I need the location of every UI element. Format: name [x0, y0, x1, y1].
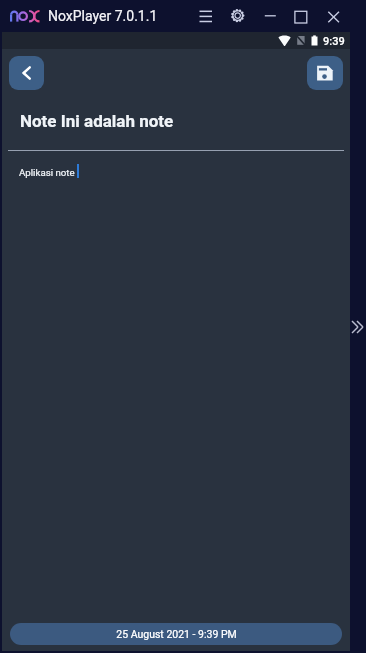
button[interactable]: Expand sidebar	[350, 310, 366, 344]
staticText: NoxPlayer 7.0.1.1	[48, 8, 158, 24]
button[interactable]: Close	[322, 4, 346, 28]
button[interactable]: Menu	[194, 3, 218, 27]
button[interactable]: Save	[307, 56, 343, 90]
staticText: Note Ini adalah note	[20, 111, 174, 131]
staticText: 9:39	[323, 35, 345, 48]
button[interactable]: Settings	[226, 3, 250, 27]
button[interactable]: Back	[9, 56, 44, 90]
staticText: 25 August 2021 - 9:39 PM	[116, 628, 237, 640]
button[interactable]: Minimize	[257, 4, 281, 28]
button[interactable]: 25 August 2021 - 9:39 PM	[10, 623, 342, 645]
staticText: Aplikasi note	[19, 167, 75, 178]
button[interactable]: Maximize	[289, 4, 313, 28]
